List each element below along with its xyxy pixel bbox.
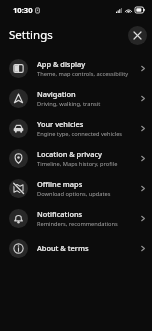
button[interactable]: Notifications (0, 203, 152, 233)
staticText: Theme, map controls, accessibility (37, 70, 129, 78)
staticText: Location & privacy (37, 149, 102, 159)
staticText: Engine type, connected vehicles (37, 130, 123, 138)
button[interactable]: App & display (0, 53, 152, 83)
button[interactable]: Navigation (0, 83, 152, 113)
staticText: Settings (9, 27, 53, 43)
staticText: Download options, updates (37, 190, 111, 198)
button[interactable]: Your vehicles (0, 113, 152, 143)
staticText: Offline maps (37, 179, 83, 189)
staticText: App & display (37, 59, 86, 69)
staticText: Reminders, recommendations (37, 220, 118, 228)
button[interactable]: Location & privacy (0, 143, 152, 173)
staticText: Your vehicles (37, 119, 84, 129)
staticText: Timeline, Maps history, profile (37, 160, 118, 168)
staticText: Navigation (37, 89, 76, 99)
button[interactable]: Close settings (128, 26, 147, 45)
staticText: 10:30 (13, 5, 33, 15)
staticText: Driving, walking, transit (37, 100, 101, 108)
staticText: About & terms (37, 243, 89, 253)
staticText: Notifications (37, 209, 83, 219)
button[interactable]: About & terms (0, 233, 152, 263)
button[interactable]: Offline maps (0, 173, 152, 203)
